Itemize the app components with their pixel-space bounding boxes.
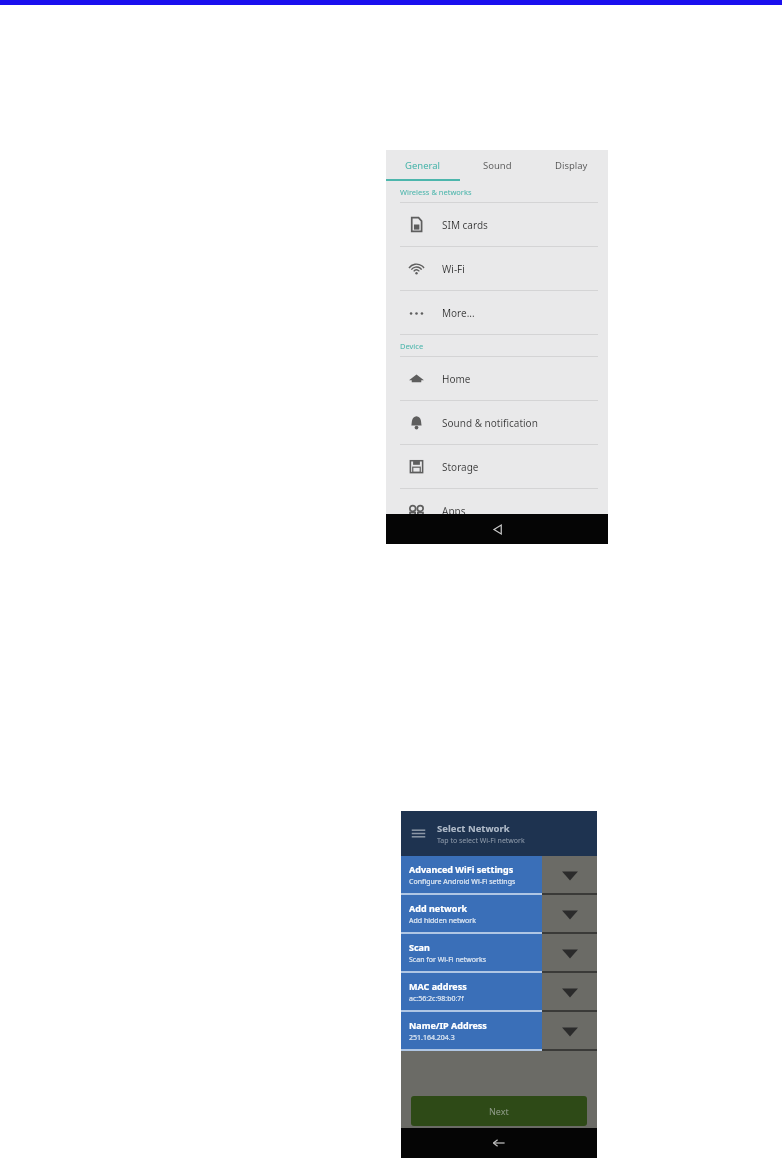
staticText: Next (489, 1105, 509, 1117)
staticText: Select Network (437, 822, 510, 835)
button[interactable]: MAC address (401, 973, 542, 1010)
staticText: Display (555, 159, 588, 172)
staticText: Scan (409, 941, 430, 953)
button[interactable]: Signal strength (542, 895, 597, 932)
button[interactable]: More... (386, 291, 608, 334)
staticText: 251.164.204.3 (409, 1033, 455, 1043)
button[interactable]: Storage (386, 445, 608, 488)
button[interactable]: Signal strength (542, 934, 597, 971)
button[interactable]: Back (485, 517, 509, 541)
button[interactable]: Signal strength (542, 973, 597, 1010)
staticText: Advanced WiFi settings (409, 863, 514, 875)
button[interactable]: Menu (401, 811, 597, 856)
staticText: Sound (483, 159, 512, 172)
button[interactable]: Sound (460, 150, 534, 181)
other: Menu (411, 826, 426, 841)
button[interactable]: Name/IP Address (401, 1012, 542, 1049)
staticText: MAC address (409, 980, 467, 992)
button[interactable]: Scan (401, 934, 542, 971)
staticText: Wireless & networks (400, 187, 472, 197)
staticText: Home (442, 372, 471, 386)
staticText: General (405, 159, 441, 172)
staticText: Wi-Fi (442, 262, 465, 276)
staticText: Apps (442, 504, 466, 518)
staticText: Tap to select Wi-Fi network (437, 836, 525, 846)
staticText: More... (442, 306, 475, 320)
button[interactable]: Signal strength (542, 856, 597, 893)
button[interactable]: Home (386, 357, 608, 400)
staticText: Add hidden network (409, 916, 476, 926)
staticText: Sound & notification (442, 416, 538, 430)
button[interactable]: Next (411, 1096, 587, 1126)
button[interactable]: Display (534, 150, 608, 181)
staticText: Add network (409, 902, 468, 914)
staticText: Device (400, 341, 424, 351)
button[interactable]: Add network (401, 895, 542, 932)
button[interactable]: SIM cards (386, 203, 608, 246)
staticText: Configure Android Wi-Fi settings (409, 877, 516, 887)
button[interactable]: Sound & notification (386, 401, 608, 444)
staticText: ac:56:2c:98:b0:7f (409, 994, 464, 1004)
staticText: Storage (442, 460, 479, 474)
staticText: Scan for Wi-Fi networks (409, 955, 486, 965)
button[interactable]: Signal strength (542, 1012, 597, 1049)
button[interactable]: Advanced WiFi settings (401, 856, 542, 893)
button[interactable]: Back (487, 1131, 511, 1155)
button[interactable]: Apps (386, 489, 608, 532)
button[interactable]: Wi-Fi (386, 247, 608, 290)
staticText: Name/IP Address (409, 1019, 487, 1031)
button[interactable]: General (386, 150, 460, 181)
staticText: SIM cards (442, 218, 488, 232)
